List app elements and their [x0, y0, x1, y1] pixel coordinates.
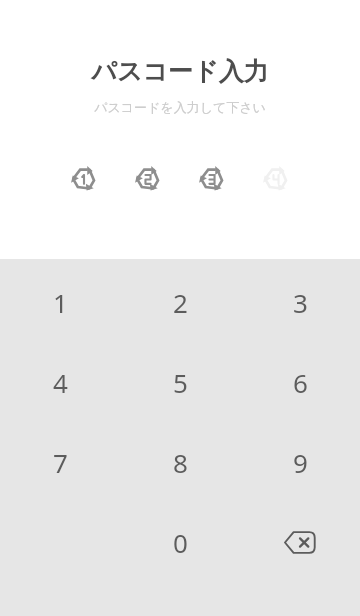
staticText: パスコード入力 [91, 56, 269, 87]
staticText: 5 [173, 365, 188, 400]
staticText: 1 [53, 285, 68, 320]
button[interactable]: 5 [120, 342, 240, 422]
button[interactable]: 8 [120, 422, 240, 502]
staticText: 6 [293, 365, 308, 400]
button[interactable]: 3 [240, 262, 360, 342]
staticText: 3 [293, 285, 308, 320]
staticText: パスコードを入力して下さい [94, 99, 266, 115]
staticText: 0 [173, 525, 188, 560]
staticText: 2 [173, 285, 188, 320]
button[interactable]: 9 [240, 422, 360, 502]
staticText: 4 [53, 365, 68, 400]
button[interactable]: 2 [120, 262, 240, 342]
button[interactable]: 0 [120, 502, 240, 582]
staticText: 8 [173, 445, 188, 480]
button[interactable]: 7 [0, 422, 120, 502]
staticText: 7 [53, 445, 68, 480]
staticText: 9 [293, 445, 308, 480]
button[interactable]: 1 [0, 262, 120, 342]
button[interactable]: Backspace [240, 502, 360, 582]
button[interactable]: 4 [0, 342, 120, 422]
button[interactable]: 6 [240, 342, 360, 422]
